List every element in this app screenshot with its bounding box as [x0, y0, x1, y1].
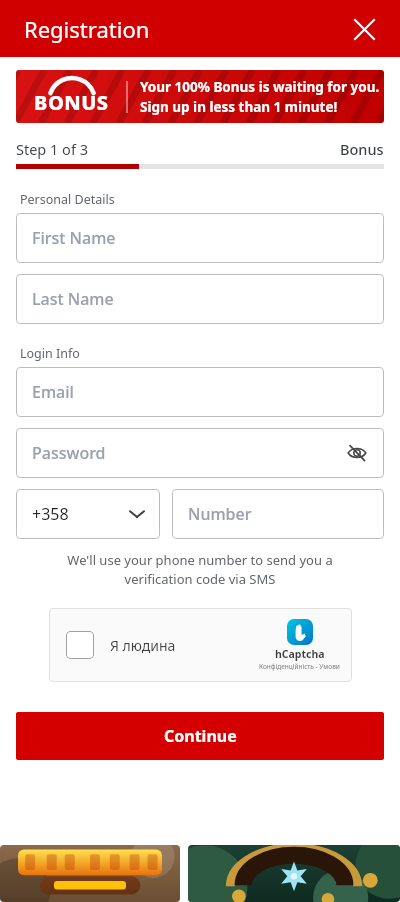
- staticText: Your 100% Bonus is waiting for you.: [140, 78, 380, 96]
- button[interactable]: Jungle wheel game: [188, 845, 400, 902]
- staticText: Я людина: [110, 636, 176, 655]
- button[interactable]: Bonus: [340, 139, 384, 159]
- button[interactable]: Continue: [16, 712, 384, 760]
- staticText: Step 1 of 3: [16, 139, 88, 159]
- staticText: Number: [188, 503, 252, 525]
- staticText: Registration: [24, 14, 150, 44]
- button[interactable]: Big Bass Splash game: [0, 845, 180, 902]
- button[interactable]: Password: [16, 428, 384, 478]
- button[interactable]: BONUS: [16, 70, 384, 123]
- button[interactable]: Email: [16, 367, 384, 417]
- staticText: Sign up in less than 1 minute!: [140, 98, 338, 116]
- staticText: Конфіденційність - Умови: [259, 662, 340, 671]
- button[interactable]: Close: [346, 11, 382, 47]
- staticText: Personal Details: [20, 191, 115, 208]
- button[interactable]: Я людина: [49, 608, 352, 682]
- button[interactable]: Show password: [340, 436, 374, 470]
- button[interactable]: Last Name: [16, 274, 384, 324]
- button[interactable]: +358: [16, 489, 160, 539]
- staticText: Password: [32, 442, 106, 464]
- button[interactable]: Number: [172, 489, 384, 539]
- staticText: +358: [32, 503, 69, 525]
- staticText: First Name: [32, 227, 116, 249]
- staticText: BONUS: [34, 89, 109, 116]
- staticText: Login Info: [20, 345, 80, 362]
- button[interactable]: First Name: [16, 213, 384, 263]
- staticText: Email: [32, 381, 74, 403]
- staticText: hCaptcha: [275, 647, 325, 661]
- staticText: Continue: [164, 725, 237, 747]
- staticText: We'll use your phone number to send you …: [42, 551, 358, 588]
- staticText: Last Name: [32, 288, 114, 310]
